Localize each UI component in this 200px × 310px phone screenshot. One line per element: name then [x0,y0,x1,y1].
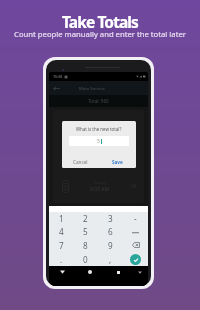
staticText: Total: 560 [88,98,109,104]
staticText: Save [112,159,123,165]
button[interactable]: . [49,252,73,266]
staticText: 5 [83,226,88,237]
button[interactable]: 4 [49,225,73,238]
button[interactable]: Done [130,254,141,265]
staticText: What is the new total? [76,126,122,132]
button[interactable]: Recent apps [104,266,132,278]
button[interactable]: Back [51,83,61,93]
button[interactable]: Cancel [62,155,99,168]
button[interactable]: 5 [69,136,129,146]
button[interactable]: 5 [73,225,98,238]
staticText: 98 [131,183,137,189]
button[interactable]: 0 [73,252,98,266]
staticText: 6 [108,226,113,237]
button[interactable]: 6 [98,225,123,238]
staticText: 9:03 AM [90,186,109,193]
staticText: - [134,213,137,224]
staticText: 9 [108,240,113,251]
other: Space [132,229,139,234]
button[interactable]: Done [123,252,148,266]
staticText: Main Service [79,85,106,91]
staticText: 1 [59,213,64,224]
button[interactable]: Save [99,155,136,168]
staticText: 15:38 [53,74,63,79]
staticText: 7 [59,240,64,251]
staticText: 3 [108,213,113,224]
other: Adjust count [62,180,69,193]
button[interactable]: - [123,212,148,225]
staticText: Count people manually and enter the tota… [14,29,186,39]
button[interactable]: Back [49,266,76,278]
button[interactable]: Space [123,225,148,238]
staticText: 0 [83,254,88,265]
staticText: . [60,254,63,265]
button[interactable]: Home [76,266,104,278]
staticText: 2 [83,213,88,224]
staticText: 5 [97,138,100,145]
button[interactable]: 1 [49,212,73,225]
button[interactable]: 9 [98,238,123,252]
staticText: Take Totals [62,11,138,32]
button[interactable]: 7 [49,238,73,252]
staticText: 8 [83,240,88,251]
staticText: 4 [59,226,64,237]
button[interactable]: Hide keyboard [132,266,148,278]
button[interactable]: 8 [73,238,98,252]
button[interactable]: 2 [73,212,98,225]
staticText: Cancel [73,159,88,165]
staticText: , [109,254,112,265]
button[interactable]: Backspace [123,238,148,252]
button[interactable]: , [98,252,123,266]
other: Backspace [132,242,140,248]
button[interactable]: 3 [98,212,123,225]
